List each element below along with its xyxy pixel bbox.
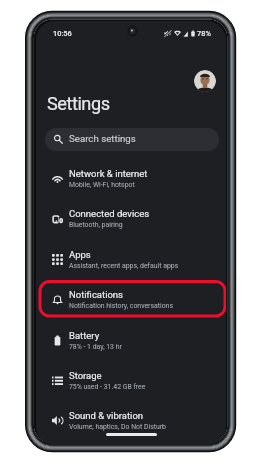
button[interactable]: Notifications [36,279,226,319]
staticText: Settings [47,93,110,114]
staticText: Bluetooth, pairing [69,221,123,229]
staticText: Mobile, Wi-Fi, hotspot [69,181,135,189]
button[interactable]: Apps [36,239,226,279]
staticText: Storage [69,370,102,381]
button[interactable]: Connected devices [36,198,226,238]
staticText: Volume, haptics, Do Not Disturb [69,423,166,431]
staticText: Sound & vibration [69,410,144,421]
button[interactable]: Network & internet [36,158,226,198]
button[interactable]: Battery [36,320,226,360]
button[interactable]: Account [194,70,216,92]
staticText: 78% - 1 day, 13 hr [69,343,122,351]
staticText: Notification history, conversations [69,302,173,310]
button[interactable]: Search settings [45,128,219,151]
staticText: 10:56 [53,29,72,38]
staticText: Network & internet [69,168,148,179]
staticText: 75% used - 31.42 GB free [69,383,146,391]
staticText: Search settings [69,133,136,144]
staticText: Battery [69,330,100,341]
staticText: 78% [197,29,211,38]
staticText: Notifications [69,289,124,300]
button[interactable]: Storage [36,360,226,400]
staticText: Connected devices [69,208,150,219]
button[interactable]: Sound & vibration [36,400,226,440]
staticText: Apps [69,249,91,260]
staticText: Assistant, recent apps, default apps [69,262,179,270]
